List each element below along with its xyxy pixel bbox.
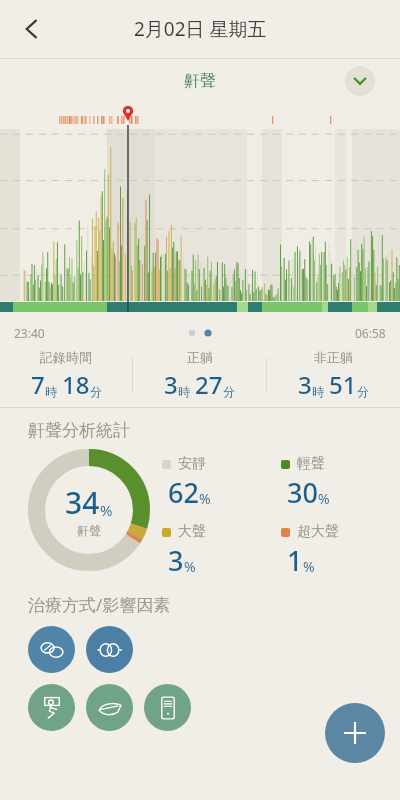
staticText: % xyxy=(318,489,330,508)
staticText: 記錄時間 xyxy=(40,349,92,365)
staticText: 鼾聲 xyxy=(184,71,216,91)
staticText: % xyxy=(199,489,211,508)
staticText: 27 xyxy=(195,368,223,401)
staticText: 3 xyxy=(168,542,184,579)
button[interactable]: Add record xyxy=(325,703,385,763)
staticText: 超大聲 xyxy=(297,523,339,541)
staticText: 分 xyxy=(357,384,369,399)
staticText: 3 xyxy=(164,368,178,401)
staticText: 34 xyxy=(65,482,100,523)
button[interactable]: Device xyxy=(144,684,191,731)
staticText: 安靜 xyxy=(178,455,206,473)
button[interactable]: Exercise xyxy=(28,684,75,731)
staticText: 18 xyxy=(62,368,90,401)
staticText: 時 xyxy=(45,384,57,399)
staticText: 正躺 xyxy=(187,349,213,365)
staticText: 06:58 xyxy=(355,325,386,341)
staticText: 大聲 xyxy=(178,523,206,541)
staticText: 鼾聲分析統計 xyxy=(28,420,130,441)
staticText: 2月02日 星期五 xyxy=(134,16,267,42)
staticText: 時 xyxy=(312,384,324,399)
staticText: 30 xyxy=(287,474,318,511)
staticText: 分 xyxy=(223,384,235,399)
staticText: 23:40 xyxy=(14,325,45,341)
staticText: 輕聲 xyxy=(297,455,325,473)
button[interactable]: Pillow xyxy=(86,684,133,731)
staticText: 治療方式/影響因素 xyxy=(28,593,171,616)
staticText: 7 xyxy=(31,368,45,401)
staticText: 3 xyxy=(298,368,312,401)
staticText: 時 xyxy=(178,384,190,399)
button[interactable]: Earplugs xyxy=(86,626,133,673)
staticText: 非正躺 xyxy=(314,349,353,365)
button[interactable]: Expand xyxy=(345,66,375,96)
staticText: 62 xyxy=(168,474,199,511)
staticText: % xyxy=(184,557,196,576)
button[interactable]: Back xyxy=(10,7,54,51)
staticText: % xyxy=(100,500,113,520)
staticText: 鼾聲 xyxy=(77,523,101,538)
staticText: 1 xyxy=(287,542,303,579)
staticText: 51 xyxy=(329,368,357,401)
button[interactable]: Medication xyxy=(28,626,75,673)
staticText: % xyxy=(303,557,315,576)
staticText: 分 xyxy=(90,384,102,399)
